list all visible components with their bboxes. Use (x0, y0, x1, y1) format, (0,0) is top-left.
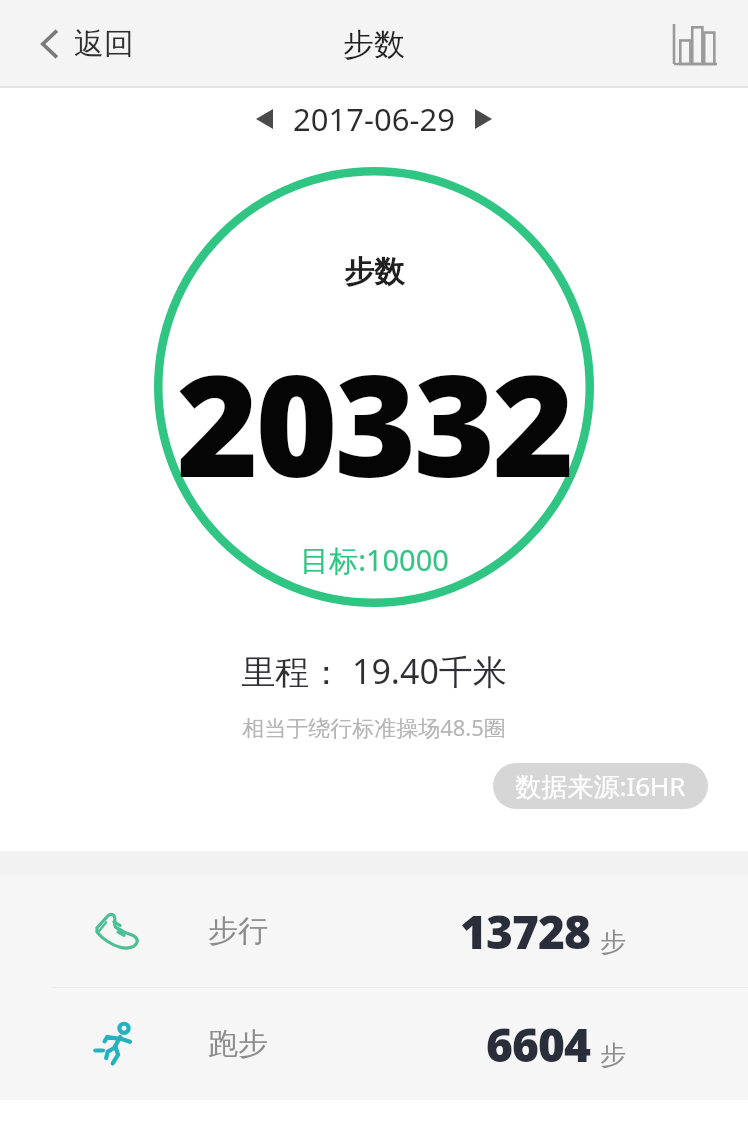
button[interactable]: Previous day (248, 101, 281, 137)
staticText: 里程： 19.40千米 (241, 648, 507, 694)
staticText: 2017-06-29 (293, 98, 455, 140)
button[interactable]: 跑步 (0, 988, 748, 1100)
staticText: 相当于绕行标准操场48.5圈 (242, 712, 506, 742)
staticText: 跑步 (208, 1025, 268, 1063)
staticText: 目标:10000 (300, 540, 449, 580)
staticText: 步 (600, 926, 626, 959)
staticText: 数据来源:I6HR (515, 768, 686, 804)
staticText: 步数 (344, 253, 404, 291)
button[interactable]: 返回 (0, 0, 158, 88)
staticText: 13728 (460, 900, 590, 963)
staticText: 6604 (486, 1013, 590, 1076)
staticText: 20332 (176, 327, 572, 518)
button[interactable]: 数据来源:I6HR (493, 763, 708, 809)
button[interactable]: History chart (642, 0, 748, 88)
staticText: 步数 (343, 25, 405, 64)
button[interactable]: Next day (467, 101, 500, 137)
staticText: 步行 (208, 912, 268, 950)
button[interactable]: 步行 (0, 875, 748, 987)
staticText: 返回 (74, 25, 134, 63)
staticText: 步 (600, 1039, 626, 1072)
